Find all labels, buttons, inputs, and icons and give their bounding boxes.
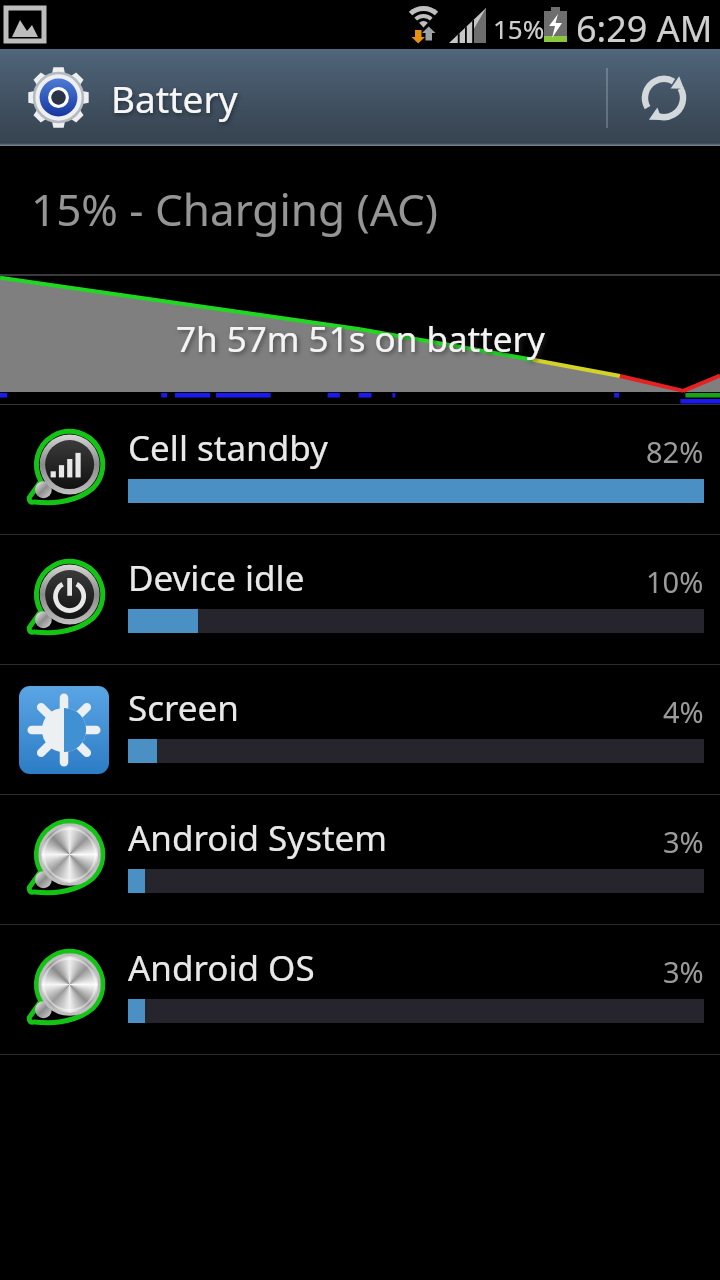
button[interactable]: Screen [0, 665, 720, 794]
staticText: 15% [493, 11, 545, 46]
staticText: 6:29 AM [576, 4, 713, 53]
staticText: Android System [128, 814, 388, 862]
button[interactable]: Cell standby [0, 405, 720, 534]
button[interactable]: Battery [0, 49, 606, 146]
staticText: Battery [111, 73, 238, 123]
button[interactable]: Android System [0, 795, 720, 924]
staticText: Device idle [128, 554, 305, 602]
staticText: 82% [646, 432, 704, 471]
button[interactable]: Device idle [0, 535, 720, 664]
button[interactable]: Android OS [0, 925, 720, 1054]
staticText: Cell standby [128, 424, 328, 472]
staticText: 3% [663, 822, 704, 861]
staticText: 10% [646, 562, 704, 601]
staticText: 15% - Charging (AC) [31, 179, 438, 239]
staticText: 7h 57m 51s on battery [176, 315, 545, 363]
staticText: 3% [663, 952, 704, 991]
staticText: Android OS [128, 944, 315, 992]
staticText: 4% [663, 692, 704, 731]
button[interactable]: Refresh [608, 49, 720, 146]
staticText: Screen [128, 684, 239, 732]
